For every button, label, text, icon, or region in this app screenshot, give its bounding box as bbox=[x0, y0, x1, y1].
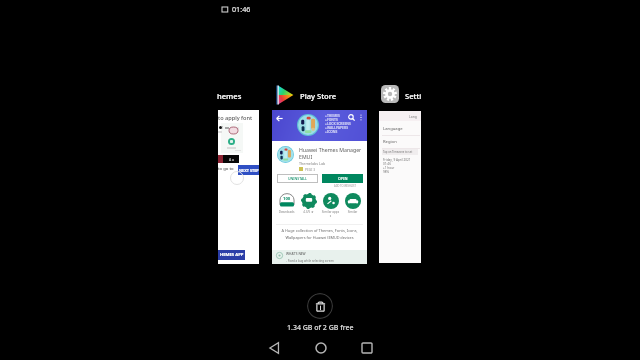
button[interactable]: Back bbox=[252, 336, 297, 360]
other: Search bbox=[348, 114, 355, 121]
button[interactable]: to apply font bbox=[218, 110, 259, 264]
staticText: 1.34 GB of 2 GB free bbox=[287, 323, 354, 333]
staticText: HEMES APP bbox=[220, 252, 244, 258]
other: More options bbox=[359, 114, 363, 121]
staticText: to apply font bbox=[218, 114, 253, 122]
staticText: +WALLPAPERS bbox=[325, 125, 348, 129]
staticText: 01:46 bbox=[383, 162, 391, 166]
staticText: +1 hour bbox=[383, 166, 395, 170]
button[interactable]: WHAT'S NEW bbox=[272, 250, 367, 264]
staticText: 01:46 bbox=[232, 4, 251, 14]
staticText: hemes bbox=[217, 91, 242, 101]
button[interactable]: UNINSTALL bbox=[277, 174, 318, 183]
staticText: 98% bbox=[383, 170, 390, 174]
staticText: A Huge collection of Themes, Fonts, Icon… bbox=[275, 228, 364, 241]
button[interactable]: OPEN bbox=[322, 174, 363, 183]
staticText: +FONTS bbox=[325, 117, 338, 121]
other: Back bbox=[276, 115, 283, 122]
button[interactable]: NEXT STEP bbox=[238, 165, 259, 175]
button[interactable]: Home bbox=[298, 336, 343, 360]
staticText: A a bbox=[229, 157, 234, 162]
staticText: +LOCK SCREENS bbox=[325, 121, 351, 125]
staticText: Themelabs Lab bbox=[299, 161, 326, 166]
staticText: Lang bbox=[409, 114, 417, 119]
staticText: OPEN bbox=[338, 176, 348, 181]
staticText: +THEMES bbox=[325, 113, 340, 117]
button[interactable]: Clear all apps bbox=[307, 293, 333, 319]
button[interactable]: Back bbox=[272, 110, 367, 264]
staticText: ADD TO WISHLIST bbox=[334, 184, 356, 188]
staticText: Tap on Timezone to set bbox=[383, 150, 413, 154]
staticText: 4.3/5 ★ bbox=[298, 210, 319, 214]
staticText: Friday, 9 April 2021 bbox=[383, 158, 411, 162]
staticText: UNINSTALL bbox=[288, 176, 307, 181]
button[interactable]: HEMES APP bbox=[218, 250, 245, 260]
staticText: to go to bbox=[218, 166, 234, 172]
staticText: Setti bbox=[405, 91, 422, 101]
staticText: EMUI bbox=[299, 153, 313, 160]
staticText: Play Store bbox=[300, 91, 337, 101]
staticText: NEXT STEP bbox=[239, 168, 259, 173]
staticText: 1 bbox=[222, 126, 224, 130]
staticText: - Fixed a bug while selecting screen bbox=[286, 259, 334, 263]
staticText: Language bbox=[383, 126, 403, 132]
staticText: +ICONS bbox=[325, 129, 338, 133]
staticText: Downloads bbox=[276, 210, 297, 214]
staticText: WHAT'S NEW bbox=[286, 252, 306, 256]
staticText: Huawei Themes Manager bbox=[299, 146, 362, 153]
staticText: Region bbox=[383, 139, 397, 145]
staticText: Similar bbox=[342, 210, 363, 214]
staticText: Similar apps s bbox=[320, 210, 341, 218]
staticText: PEGI 3 bbox=[305, 167, 316, 171]
button[interactable]: Lang bbox=[379, 111, 421, 263]
staticText: 100 bbox=[283, 196, 291, 202]
button[interactable]: Recent apps bbox=[344, 336, 389, 360]
